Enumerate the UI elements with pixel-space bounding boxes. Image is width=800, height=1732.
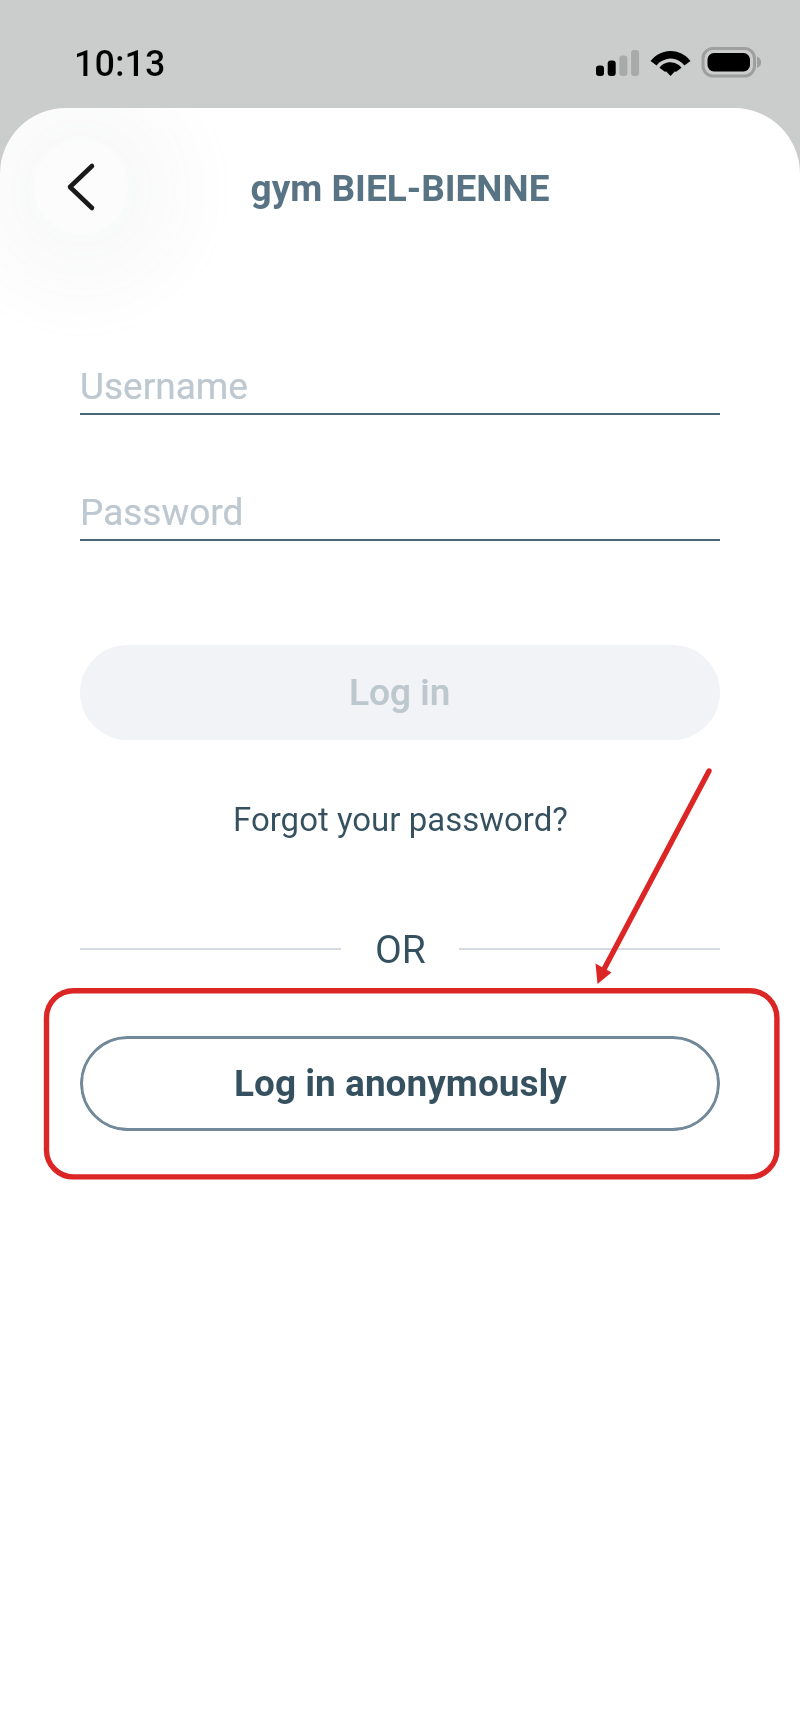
staticText: Username (80, 365, 248, 408)
staticText: OR (375, 927, 426, 973)
staticText: Log in anonymously (234, 1062, 567, 1105)
button[interactable]: Log in anonymously (80, 1036, 720, 1131)
staticText: Password (80, 491, 244, 534)
staticText: 10:13 (74, 43, 166, 85)
button[interactable]: Log in (80, 645, 720, 740)
staticText: gym BIEL-BIENNE (0, 167, 800, 210)
staticText: Forgot your password? (233, 800, 568, 839)
button[interactable]: Forgot your password? (225, 793, 575, 845)
button[interactable]: Back (34, 140, 128, 234)
staticText: Log in (349, 671, 451, 714)
